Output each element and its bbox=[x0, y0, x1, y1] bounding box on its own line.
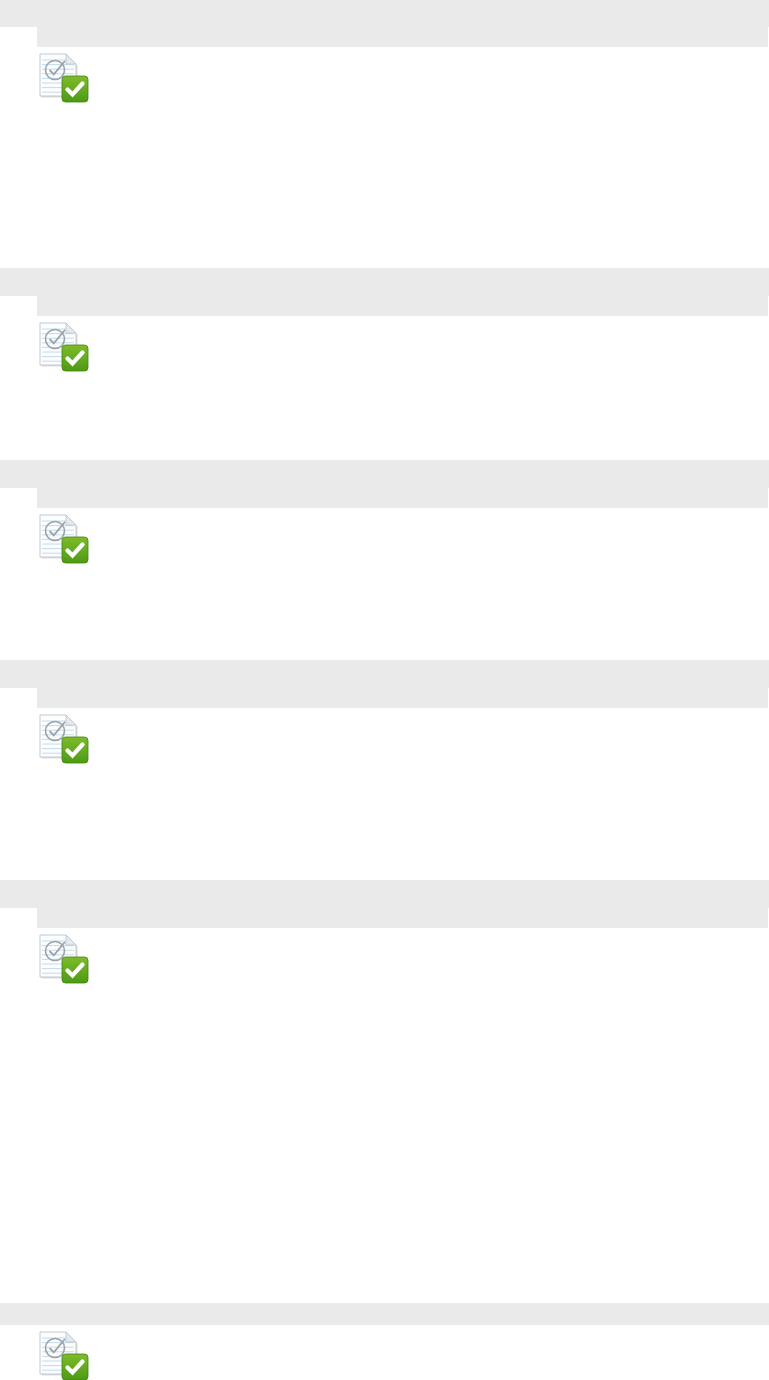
button[interactable]: Completed document bbox=[0, 1325, 769, 1380]
button[interactable]: Completed document bbox=[0, 708, 769, 880]
button[interactable]: Completed document bbox=[0, 316, 769, 460]
button[interactable]: Completed document bbox=[0, 508, 769, 660]
button[interactable]: Completed document bbox=[38, 321, 90, 373]
button[interactable]: Completed document bbox=[38, 513, 90, 565]
button[interactable]: Completed document bbox=[38, 713, 90, 765]
button[interactable]: Completed document bbox=[38, 933, 90, 985]
button[interactable]: Completed document bbox=[0, 928, 769, 1303]
button[interactable]: Completed document bbox=[38, 52, 90, 104]
button[interactable]: Completed document bbox=[38, 1330, 90, 1380]
button[interactable]: Completed document bbox=[0, 47, 769, 268]
